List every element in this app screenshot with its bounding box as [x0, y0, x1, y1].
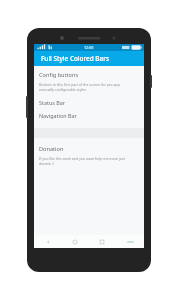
staticText: 12:00 — [84, 45, 94, 50]
staticText: Config buttons — [39, 71, 79, 79]
button[interactable]: More — [116, 235, 144, 248]
button[interactable]: Recent apps — [88, 235, 116, 248]
staticText: Status Bar — [39, 99, 65, 106]
staticText: Buttons in this first part of the screen… — [39, 82, 120, 92]
button[interactable]: Status Bar — [34, 96, 144, 109]
staticText: Full Style Colored Bars — [41, 54, 109, 63]
staticText: Donation — [39, 145, 64, 153]
button[interactable]: Back — [34, 235, 61, 248]
button[interactable]: Navigation Bar — [34, 109, 144, 122]
staticText: Navigation Bar — [39, 112, 77, 119]
button[interactable]: Home — [61, 235, 88, 248]
staticText: If you like this work and you want help … — [39, 156, 139, 166]
button[interactable]: Full Style Colored Bars — [34, 51, 144, 66]
